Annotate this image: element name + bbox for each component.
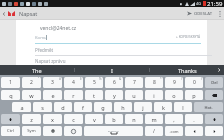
staticText: w bbox=[29, 92, 34, 99]
staticText: h bbox=[121, 104, 125, 111]
staticText: m bbox=[151, 116, 157, 123]
staticText: l bbox=[182, 104, 184, 111]
staticText: Sym bbox=[27, 128, 36, 134]
button[interactable]: Move cursor right bbox=[205, 126, 223, 136]
staticText: 9 bbox=[173, 79, 176, 86]
staticText: , bbox=[173, 116, 175, 123]
button[interactable]: j bbox=[134, 102, 152, 112]
staticText: Thanks bbox=[178, 67, 197, 74]
staticText: ENGLISH bbox=[108, 129, 119, 132]
button[interactable]: w bbox=[22, 90, 41, 100]
staticText: c bbox=[72, 116, 75, 123]
button[interactable]: 4 bbox=[64, 77, 83, 88]
staticText: v bbox=[93, 116, 96, 123]
staticText: o bbox=[172, 92, 176, 99]
button[interactable]: s bbox=[33, 102, 52, 112]
button[interactable]: 6 bbox=[105, 77, 123, 88]
staticText: $ bbox=[80, 77, 82, 81]
button[interactable]: Hot. bbox=[194, 102, 223, 112]
button[interactable]: z bbox=[22, 114, 41, 124]
staticText: q bbox=[9, 92, 13, 99]
button[interactable]: Back bbox=[0, 7, 7, 20]
button[interactable]: o bbox=[165, 90, 183, 100]
staticText: 0 bbox=[193, 79, 196, 86]
button[interactable]: I bbox=[75, 65, 149, 75]
button[interactable]: , bbox=[165, 114, 183, 124]
button[interactable]: .com bbox=[165, 126, 183, 136]
button[interactable]: 9 bbox=[165, 77, 183, 88]
button[interactable]: 1 bbox=[1, 77, 20, 88]
staticText: 4 bbox=[72, 79, 75, 86]
button[interactable]: y bbox=[105, 90, 123, 100]
button[interactable]: g bbox=[94, 102, 112, 112]
staticText: j bbox=[142, 104, 144, 111]
staticText: Napsat zprávu bbox=[35, 58, 66, 64]
staticText: ) bbox=[201, 77, 202, 81]
staticText: ( bbox=[181, 77, 182, 81]
staticText: e bbox=[51, 92, 55, 99]
staticText: + KOPIE/SKRYTÁ bbox=[176, 35, 201, 39]
button[interactable]: 5 bbox=[85, 77, 103, 88]
button[interactable]: u bbox=[125, 90, 143, 100]
button[interactable]: . bbox=[185, 114, 203, 124]
button[interactable]: Emoji bbox=[64, 126, 82, 136]
staticText: .com bbox=[169, 129, 179, 134]
button[interactable]: 7 bbox=[125, 77, 143, 88]
button[interactable]: v bbox=[85, 114, 103, 124]
button[interactable]: Shift bbox=[1, 114, 20, 124]
staticText: d bbox=[61, 104, 65, 111]
button[interactable]: x bbox=[43, 114, 62, 124]
staticText: ' bbox=[141, 77, 142, 81]
button[interactable]: l bbox=[174, 102, 192, 112]
staticText: f bbox=[82, 104, 84, 111]
button[interactable]: p bbox=[185, 90, 203, 100]
button[interactable]: More suggestions bbox=[214, 65, 224, 75]
button[interactable]: 3 bbox=[43, 77, 62, 88]
button[interactable]: d bbox=[54, 102, 72, 112]
staticText: b bbox=[112, 116, 116, 123]
button[interactable]: Sym bbox=[22, 126, 41, 136]
button[interactable]: r bbox=[64, 90, 83, 100]
button[interactable]: 8 bbox=[145, 77, 163, 88]
staticText: 5 bbox=[93, 79, 96, 86]
button[interactable]: n bbox=[125, 114, 143, 124]
button[interactable]: i bbox=[145, 90, 163, 100]
staticText: * bbox=[160, 77, 162, 81]
button[interactable]: q bbox=[1, 90, 20, 100]
staticText: x bbox=[51, 116, 54, 123]
button[interactable]: Space bbox=[84, 126, 143, 136]
button[interactable]: k bbox=[154, 102, 172, 112]
staticText: 7 bbox=[133, 79, 136, 86]
staticText: " bbox=[38, 77, 40, 81]
button[interactable]: f bbox=[74, 102, 92, 112]
button[interactable]: Ctrl bbox=[1, 126, 20, 136]
staticText: 1 bbox=[9, 79, 12, 86]
button[interactable]: / bbox=[145, 126, 163, 136]
button[interactable]: 2 bbox=[22, 77, 41, 88]
button[interactable]: h bbox=[114, 102, 132, 112]
button[interactable]: b bbox=[105, 114, 123, 124]
staticText: y bbox=[113, 92, 116, 99]
button[interactable]: e bbox=[43, 90, 62, 100]
button[interactable]: c bbox=[64, 114, 83, 124]
button[interactable]: Del bbox=[205, 77, 223, 88]
staticText: # bbox=[59, 77, 61, 81]
button[interactable]: m bbox=[145, 114, 163, 124]
staticText: t bbox=[93, 92, 95, 99]
staticText: The bbox=[32, 67, 42, 74]
button[interactable]: The bbox=[0, 65, 74, 75]
button[interactable]: a bbox=[12, 102, 31, 112]
staticText: 3 bbox=[51, 79, 54, 86]
button[interactable]: t bbox=[85, 90, 103, 100]
button[interactable]: Shift bbox=[205, 114, 223, 124]
button[interactable]: Backspace bbox=[205, 90, 223, 100]
staticText: 21:59 bbox=[207, 0, 223, 7]
staticText: u bbox=[132, 92, 136, 99]
button[interactable]: More options bbox=[215, 7, 224, 20]
button[interactable]: Move cursor left bbox=[185, 126, 203, 136]
button[interactable]: Thanks bbox=[150, 65, 224, 75]
button[interactable]: 0 bbox=[185, 77, 203, 88]
button[interactable]: ODESLAT bbox=[185, 7, 215, 20]
staticText: z bbox=[30, 116, 33, 123]
button[interactable]: Keyboard settings bbox=[43, 126, 62, 136]
